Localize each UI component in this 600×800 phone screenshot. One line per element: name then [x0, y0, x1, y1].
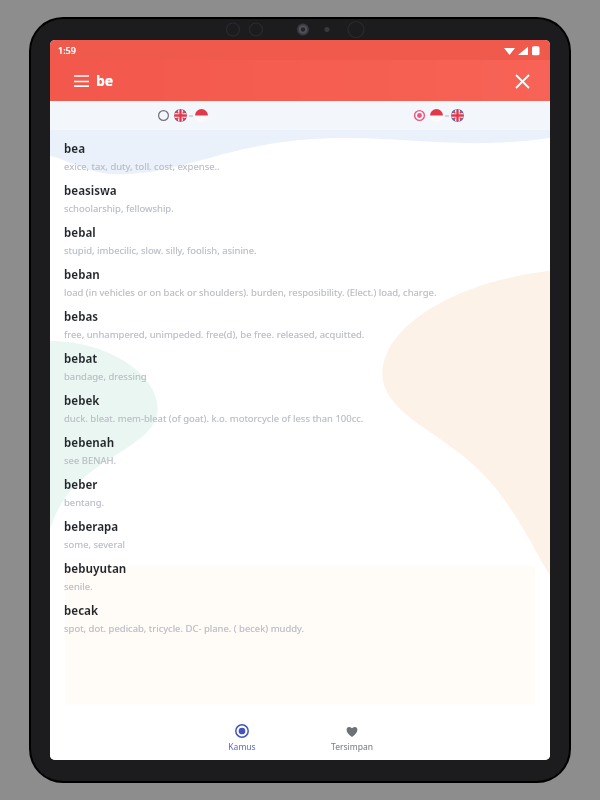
- staticText: exice, tax, duty, toll. cost, expense..: [64, 160, 220, 173]
- staticText: senile.: [64, 580, 93, 593]
- button[interactable]: bebat: [50, 346, 550, 388]
- staticText: bebat: [64, 351, 98, 367]
- button[interactable]: becak: [50, 598, 550, 640]
- button[interactable]: beban: [50, 262, 550, 304]
- staticText: bebal: [64, 225, 96, 241]
- staticText: bandage, dressing: [64, 370, 147, 383]
- staticText: bentang.: [64, 496, 105, 509]
- staticText: be: [96, 71, 114, 90]
- staticText: see BENAH.: [64, 454, 117, 467]
- staticText: bebas: [64, 309, 99, 325]
- staticText: bebuyutan: [64, 561, 127, 577]
- button[interactable]: beber: [50, 472, 550, 514]
- staticText: schoolarship, fellowship.: [64, 202, 174, 215]
- button[interactable]: Tersimpan: [297, 716, 407, 760]
- button[interactable]: Close: [508, 67, 536, 95]
- button[interactable]: Kamus: [187, 716, 297, 760]
- staticText: beberapa: [64, 519, 119, 535]
- staticText: stupid, imbecilic, slow. silly, foolish,…: [64, 244, 257, 257]
- staticText: beasiswa: [64, 183, 117, 199]
- button[interactable]: bea: [50, 136, 550, 178]
- button[interactable]: bebal: [50, 220, 550, 262]
- staticText: Tersimpan: [331, 741, 373, 753]
- button[interactable]: beasiswa: [50, 178, 550, 220]
- button[interactable]: beberapa: [50, 514, 550, 556]
- button[interactable]: [154, 106, 212, 125]
- staticText: duck. bleat. mem-bleat (of goat). k.o. m…: [64, 412, 364, 425]
- staticText: bebenah: [64, 435, 115, 451]
- staticText: beban: [64, 267, 100, 283]
- staticText: bea: [64, 141, 86, 157]
- staticText: load (in vehicles or on back or shoulder…: [64, 286, 437, 299]
- staticText: free, unhampered, unimpeded. free(d), be…: [64, 328, 365, 341]
- staticText: some, several: [64, 538, 125, 551]
- staticText: bebek: [64, 393, 100, 409]
- button[interactable]: bebek: [50, 388, 550, 430]
- staticText: spot, dot. pedicab, tricycle. DC- plane.…: [64, 622, 305, 635]
- staticText: beber: [64, 477, 98, 493]
- button[interactable]: bebenah: [50, 430, 550, 472]
- staticText: Kamus: [228, 741, 256, 753]
- button[interactable]: bebuyutan: [50, 556, 550, 598]
- staticText: 1:59: [58, 44, 76, 56]
- staticText: becak: [64, 603, 99, 619]
- button[interactable]: bebas: [50, 304, 550, 346]
- button[interactable]: [410, 106, 468, 125]
- button[interactable]: Open navigation menu: [68, 68, 94, 94]
